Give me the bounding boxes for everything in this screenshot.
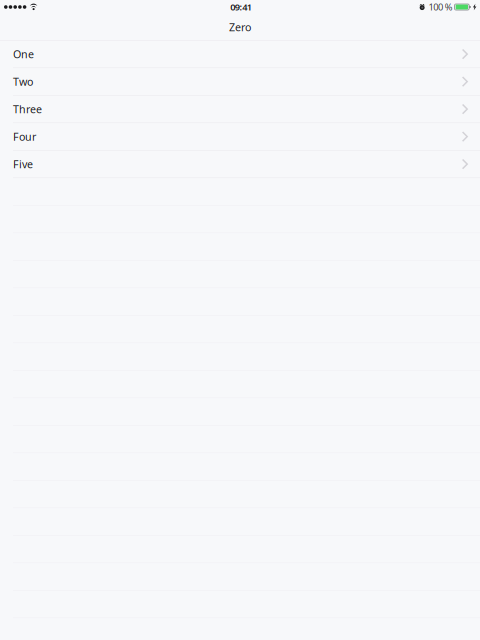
staticText: % — [445, 1, 453, 13]
button[interactable]: Five — [0, 151, 480, 178]
staticText: Three — [13, 102, 42, 116]
staticText: Zero — [229, 20, 251, 34]
staticText: One — [13, 47, 34, 61]
staticText: Four — [13, 129, 36, 144]
staticText: 100 — [429, 1, 443, 13]
button[interactable]: Three — [0, 96, 480, 123]
button[interactable]: Four — [0, 123, 480, 151]
button[interactable]: One — [0, 41, 480, 68]
staticText: 09:41 — [230, 1, 252, 13]
button[interactable]: Two — [0, 68, 480, 96]
staticText: Two — [13, 74, 33, 89]
staticText: Five — [13, 157, 33, 171]
